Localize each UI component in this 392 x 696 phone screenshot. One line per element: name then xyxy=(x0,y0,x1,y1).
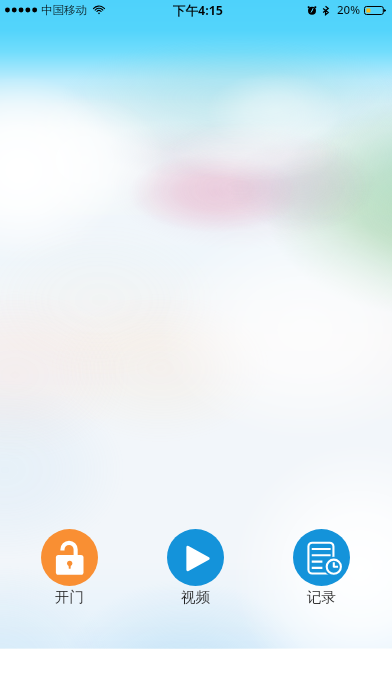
staticText: 开门 xyxy=(55,588,84,606)
staticText: 视频 xyxy=(181,588,210,606)
button[interactable]: 记录 xyxy=(293,529,350,606)
button[interactable]: 视频 xyxy=(167,529,224,606)
staticText: 20% xyxy=(337,2,360,18)
staticText: 记录 xyxy=(307,588,336,606)
staticText: 下午4:15 xyxy=(173,2,223,19)
button[interactable]: 开门 xyxy=(41,529,98,606)
staticText: 中国移动 xyxy=(41,3,87,17)
